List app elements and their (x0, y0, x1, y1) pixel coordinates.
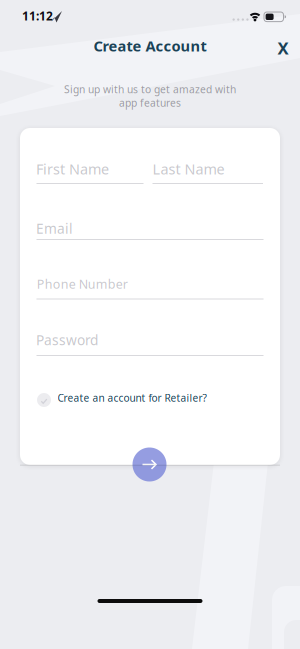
button[interactable]: Last Name (152, 159, 263, 185)
staticText: Sign up with us to get amazed with (64, 82, 236, 96)
button[interactable]: Close (269, 35, 297, 61)
button[interactable]: Password (36, 330, 263, 356)
staticText: Last Name (152, 159, 224, 179)
staticText: Email (36, 219, 73, 238)
staticText: app features (119, 96, 181, 110)
button[interactable]: Phone Number (37, 275, 264, 300)
staticText: 11:12 (22, 8, 53, 24)
button[interactable]: Create an account for Retailer? (37, 392, 207, 408)
staticText: Phone Number (37, 275, 128, 292)
staticText: Password (36, 330, 98, 349)
staticText: X (277, 37, 288, 59)
button[interactable]: Email (36, 219, 263, 241)
staticText: First Name (36, 159, 109, 179)
button[interactable]: First Name (36, 159, 143, 185)
staticText: Create an account for Retailer? (57, 391, 206, 405)
staticText: Create Account (93, 36, 206, 55)
button[interactable]: Continue (132, 447, 166, 481)
